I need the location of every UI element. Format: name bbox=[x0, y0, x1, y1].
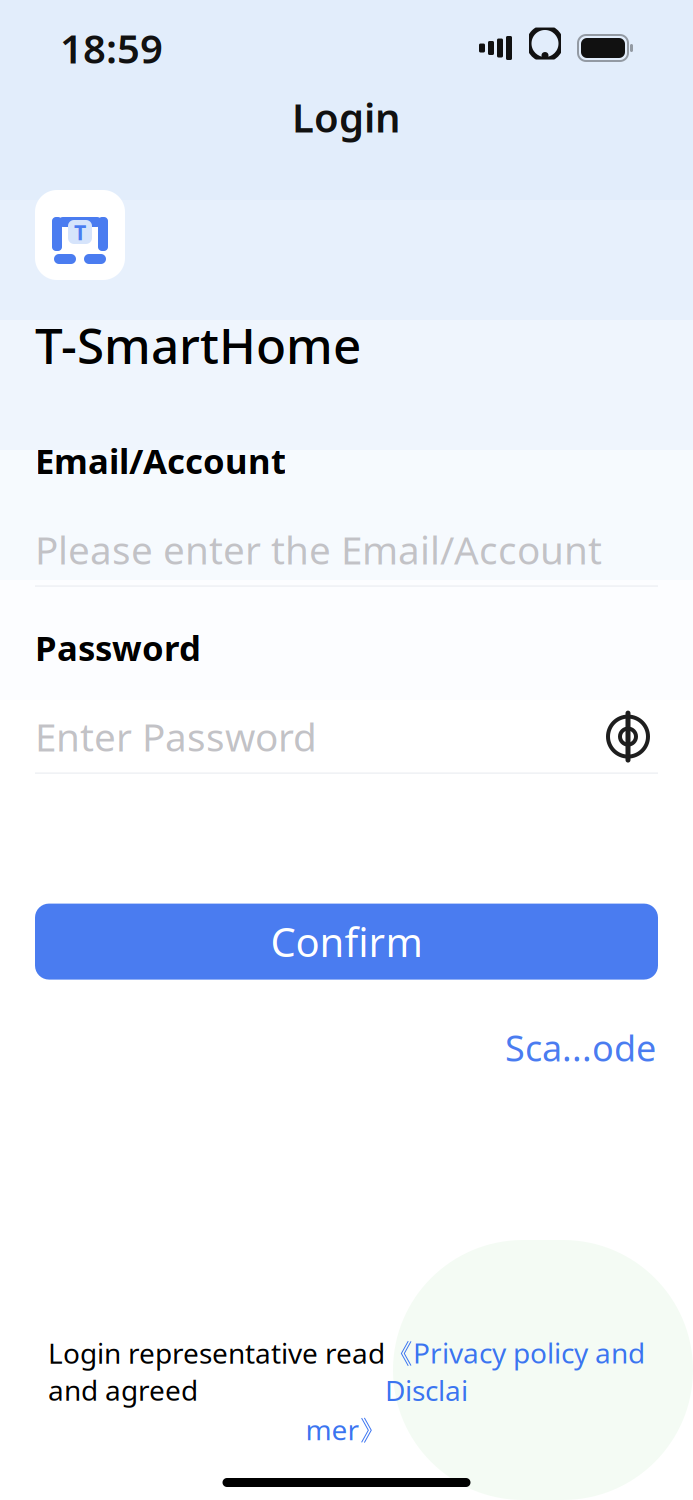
staticText: Login bbox=[292, 90, 401, 143]
staticText: mer》 bbox=[305, 1411, 387, 1448]
staticText: 《Privacy policy and Disclai bbox=[385, 1334, 645, 1409]
button[interactable]: Confirm bbox=[35, 904, 658, 980]
button[interactable]: mer》 bbox=[305, 1411, 387, 1448]
staticText: 18:59 bbox=[60, 21, 163, 74]
staticText: Email/Account bbox=[35, 437, 286, 483]
staticText: Sca...ode bbox=[505, 1024, 656, 1071]
staticText: Enter Password bbox=[35, 711, 317, 762]
button[interactable]: Show password bbox=[598, 709, 658, 765]
staticText: Password bbox=[35, 624, 201, 670]
staticText: T bbox=[74, 218, 86, 246]
staticText: Confirm bbox=[270, 915, 422, 968]
staticText: Please enter the Email/Account bbox=[35, 524, 602, 575]
staticText: T-SmartHome bbox=[35, 312, 361, 377]
button[interactable]: Sca...ode bbox=[505, 1012, 656, 1083]
button[interactable]: 《Privacy policy and Disclai bbox=[385, 1334, 645, 1409]
staticText: Login representative read and agreed bbox=[48, 1334, 385, 1409]
